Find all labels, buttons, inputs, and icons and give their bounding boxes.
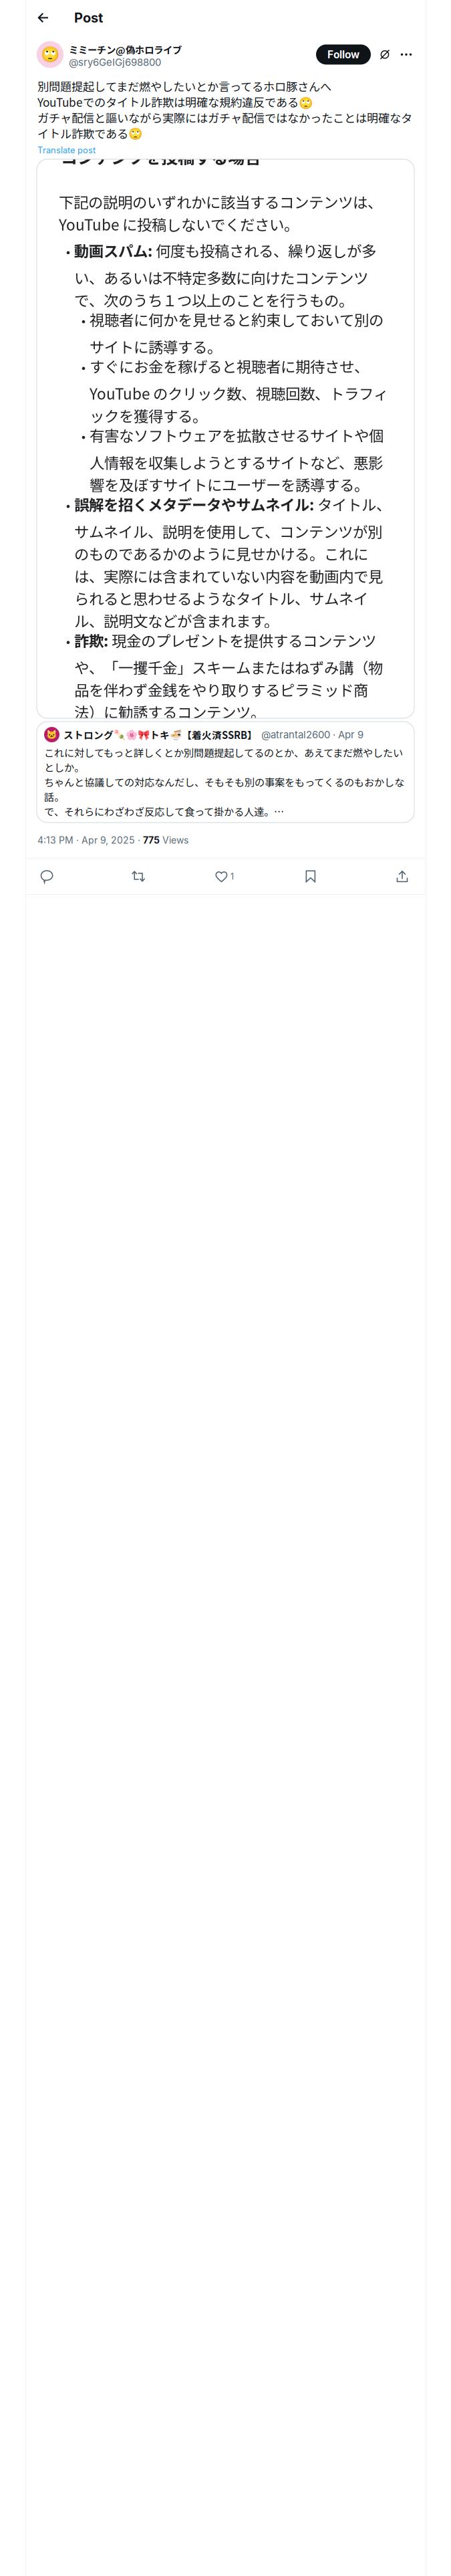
staticText: @atrantal2600 · Apr 9 [261,730,363,739]
staticText: サムネイル、説明を使用して、コンテンツが別 [74,525,382,538]
button[interactable]: Back [32,6,55,29]
staticText: YouTubeでのタイトル詐欺は明確な規約違反である🙄 [37,96,313,108]
button[interactable]: Like [215,862,234,891]
staticText: Follow [327,48,359,61]
staticText: で、それらにわざわざ反応して食って掛かる人達。… [44,806,284,817]
staticText: られると思わせるようなタイトル、サムネイ [74,592,368,605]
staticText: 動画スパム: [74,244,156,257]
staticText: 別問題提起してまだ燃やしたいとか言ってるホロ豚さんへ [37,80,331,92]
staticText: タイトル、 [317,498,391,511]
button[interactable]: More [396,44,416,65]
staticText: ちゃんと協議しての対応なんだし、そもそも別の事案をもってくるのもおかしな [44,776,404,787]
staticText: 下記の説明のいずれかに該当するコンテンツは、 [59,195,382,208]
staticText: Views [160,835,188,846]
staticText: これに対してもっと詳しくとか別問題提起してるのとか、あえてまだ燃やしたい [44,747,403,758]
staticText: ガチャ配信と謳いながら実際にはガチャ配信ではなかったことは明確なタ [37,112,412,124]
staticText: Post [74,10,103,26]
staticText: すぐにお金を稼げると視聴者に期待させ、 [90,360,369,373]
staticText: 何度も投稿される、繰り返しが多 [156,244,376,257]
button[interactable]: Translate post [26,141,426,159]
staticText: コンテンツを投稿する場合 [61,150,261,164]
staticText: 🙄 [41,46,59,63]
staticText: 誤解を招くメタデータやサムネイル: [74,498,317,511]
staticText: 現金のプレゼントを提供するコンテンツ [112,634,376,647]
staticText: い、あるいは不特定多数に向けたコンテンツ [74,271,368,284]
staticText: YouTube のクリック数、視聴回数、トラフィ [90,387,388,400]
staticText: 話。 [44,791,64,802]
staticText: のものであるかのように見せかける。これに [74,547,368,560]
staticText: イトル詐欺である🙄 [37,127,142,139]
staticText: YouTube に投稿しないでください。 [59,218,299,231]
staticText: 1 [230,871,234,882]
staticText: 有害なソフトウェアを拡散させるサイトや個 [90,429,384,442]
staticText: ル、説明文などが含まれます。 [74,614,279,627]
staticText: 響を及ぼすサイトにユーザーを誘導する。 [90,478,369,491]
button[interactable]: Reply [32,862,61,891]
staticText: は、実際には含まれていない内容を動画内で見 [74,569,383,582]
staticText: Translate post [37,145,96,155]
button[interactable]: Repost [124,862,153,891]
staticText: 人情報を収集しようとするサイトなど、悪影 [90,456,383,469]
staticText: 🐱 [46,729,57,740]
staticText: ックを獲得する。 [90,409,207,422]
staticText: 品を伴わず金銭をやり取りするピラミッド商 [74,683,368,696]
staticText: で、次のうち１つ以上のことを行うもの。 [74,293,353,306]
button[interactable]: Follow [316,44,371,65]
staticText: 詐欺: [74,634,112,647]
staticText: 775 [143,835,160,846]
button[interactable]: Bookmark [296,862,325,891]
button[interactable]: Share [388,862,417,891]
staticText: 視聴者に何かを見せると約束しておいて別の [90,313,384,326]
staticText: や、「一攫千金」スキームまたはねずみ講（物 [74,661,383,674]
button[interactable]: 🐱 [26,718,414,823]
staticText: としか。 [44,761,84,773]
staticText: ミミーチン@偽ホロライブ [69,44,182,55]
staticText: 4:13 PM · Apr 9, 2025 · [37,835,143,846]
staticText: ストロング🍡🌸🎀トキ🍜【着火済SSRB】 [63,729,257,740]
staticText: サイトに誘導する。 [90,340,222,353]
staticText: @sry6GeIGj698800 [69,57,161,67]
staticText: 法）に勧誘するコンテンツ。 [74,705,265,718]
button[interactable]: Grok [375,44,395,65]
